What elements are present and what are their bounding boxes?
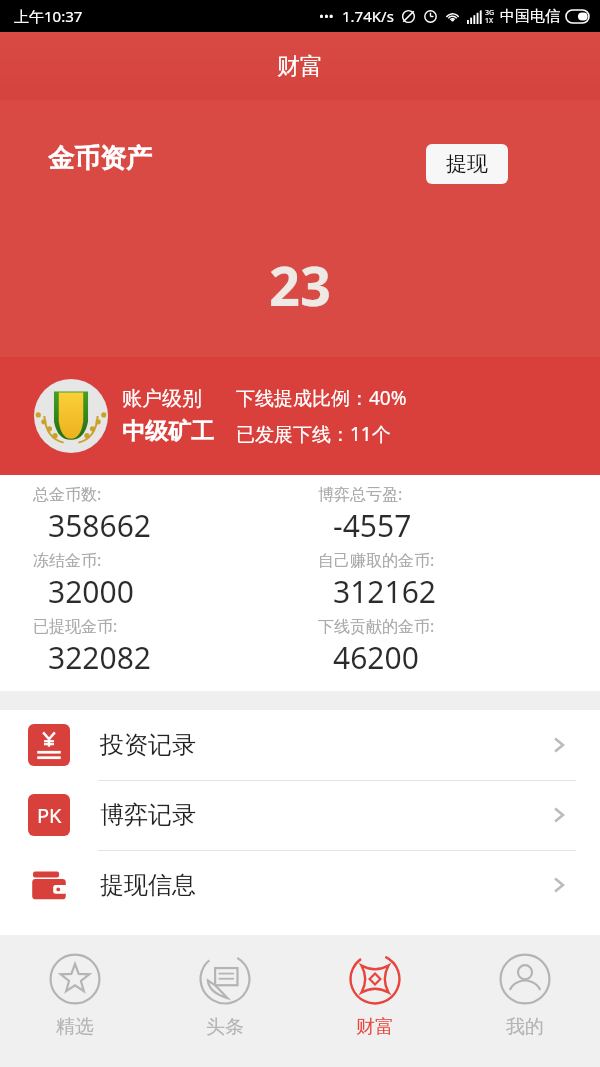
staticText: 博弈总亏盈: xyxy=(318,483,403,505)
other: 我的 xyxy=(499,953,551,1005)
button[interactable]: 财富 xyxy=(300,935,450,1067)
staticText: 提现 xyxy=(446,151,488,177)
staticText: 下线提成比例：40% xyxy=(236,385,407,411)
staticText: 冻结金币: xyxy=(33,549,102,571)
button[interactable]: 提现信息 xyxy=(0,850,600,920)
staticText: ••• xyxy=(319,7,334,25)
button[interactable]: 头条 xyxy=(150,935,300,1067)
staticText: 上午10:37 xyxy=(14,6,83,26)
staticText: 中级矿工 xyxy=(122,417,214,446)
button[interactable]: PK xyxy=(0,780,600,850)
staticText: 财富 xyxy=(277,52,323,81)
staticText: -4557 xyxy=(333,505,412,546)
staticText: 312162 xyxy=(333,571,436,612)
staticText: 头条 xyxy=(206,1015,244,1039)
other: 精选 xyxy=(49,953,101,1005)
staticText: 账户级别 xyxy=(122,386,202,411)
staticText: 23 xyxy=(269,248,331,322)
staticText: 我的 xyxy=(506,1015,544,1039)
staticText: 322082 xyxy=(48,637,151,678)
staticText: 投资记录 xyxy=(100,730,196,760)
staticText: 财富 xyxy=(356,1015,394,1039)
staticText: 46200 xyxy=(333,637,419,678)
staticText: 1.74K/s xyxy=(342,6,394,26)
staticText: 32000 xyxy=(48,571,134,612)
other: 头条 xyxy=(199,953,251,1005)
staticText: 自己赚取的金币: xyxy=(318,549,435,571)
staticText: 3G 1X xyxy=(485,8,495,25)
staticText: PK xyxy=(37,802,62,829)
button[interactable]: 我的 xyxy=(450,935,600,1067)
button[interactable]: 精选 xyxy=(0,935,150,1067)
staticText: 358662 xyxy=(48,505,151,546)
staticText: 精选 xyxy=(56,1015,94,1039)
staticText: 已发展下线：11个 xyxy=(236,421,391,447)
button[interactable]: 投资记录 xyxy=(0,710,600,780)
staticText: 中国电信 xyxy=(500,7,560,26)
staticText: 博弈记录 xyxy=(100,800,196,830)
staticText: 下线贡献的金币: xyxy=(318,615,435,637)
staticText: 已提现金币: xyxy=(33,615,118,637)
staticText: 总金币数: xyxy=(33,483,102,505)
other: 财富 xyxy=(349,953,401,1005)
staticText: 提现信息 xyxy=(100,870,196,900)
staticText: 金币资产 xyxy=(48,142,152,175)
button[interactable]: 提现 xyxy=(426,144,508,184)
